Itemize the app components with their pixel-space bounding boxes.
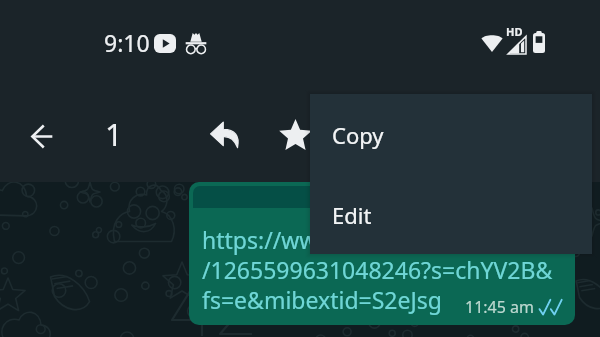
button[interactable]: Copy: [310, 94, 592, 174]
button[interactable]: Reply: [209, 119, 240, 150]
button[interactable]: Edit: [310, 174, 592, 254]
staticText: 9:10: [104, 27, 150, 58]
staticText: https://www.facebook.com /12655996310482…: [202, 224, 553, 315]
staticText: 11:45 am: [465, 296, 534, 318]
staticText: Edit: [332, 200, 372, 230]
staticText: Copy: [332, 120, 384, 150]
staticText: 1: [105, 113, 123, 155]
staticText: HD: [506, 24, 523, 39]
button[interactable]: Star: [279, 118, 312, 151]
button[interactable]: Back: [31, 124, 53, 149]
